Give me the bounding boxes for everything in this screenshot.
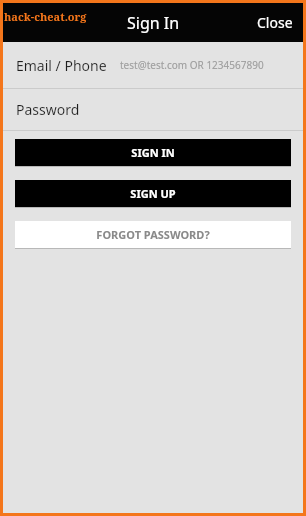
staticText: FORGOT PASSWORD? xyxy=(96,227,210,242)
staticText: Close xyxy=(257,13,293,32)
staticText: Password xyxy=(16,100,80,119)
staticText: hack-cheat.org xyxy=(4,9,87,24)
button[interactable]: Email / Phone xyxy=(3,42,303,88)
staticText: SIGN UP xyxy=(130,186,176,201)
staticText: test@test.com OR 1234567890 xyxy=(120,58,264,72)
staticText: Email / Phone xyxy=(16,56,107,75)
button[interactable]: SIGN IN xyxy=(15,139,291,166)
button[interactable]: Password xyxy=(3,89,303,130)
staticText: SIGN IN xyxy=(131,145,175,160)
button[interactable]: Close xyxy=(247,5,303,40)
staticText: Sign In xyxy=(127,12,180,34)
button[interactable]: FORGOT PASSWORD? xyxy=(15,221,291,248)
button[interactable]: SIGN UP xyxy=(15,180,291,207)
